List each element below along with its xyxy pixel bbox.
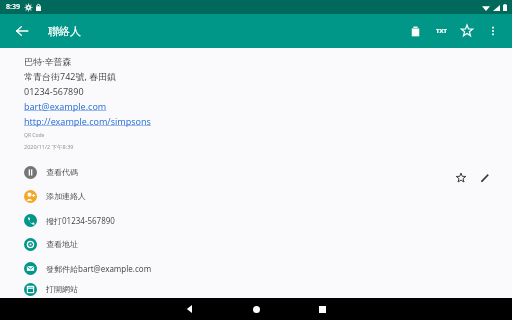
button[interactable]: Home [241, 298, 271, 320]
staticText: 2020/11/2 下午8:39 [24, 143, 74, 151]
staticText: 8:39 [6, 2, 20, 12]
button[interactable]: Recent apps [307, 298, 337, 320]
staticText: 巴特·辛普森 [24, 55, 72, 67]
button[interactable]: Favorite [454, 18, 480, 44]
staticText: 添加連絡人 [46, 191, 86, 201]
button[interactable]: 發郵件給bart@example.com [0, 256, 512, 280]
button[interactable]: Text format [428, 18, 454, 44]
button[interactable]: 查看代碼 [0, 160, 512, 184]
button[interactable]: Edit [476, 169, 494, 187]
staticText: 發郵件給bart@example.com [46, 263, 152, 274]
button[interactable]: 添加連絡人 [0, 184, 512, 208]
button[interactable]: More options [480, 18, 506, 44]
staticText: 聯絡人 [48, 24, 81, 38]
staticText: TXT [436, 27, 447, 35]
staticText: 01234-567890 [24, 85, 84, 97]
button[interactable]: Delete [402, 18, 428, 44]
staticText: 查看地址 [46, 239, 78, 249]
staticText: QR Code [24, 132, 45, 139]
button[interactable]: 查看地址 [0, 232, 512, 256]
button[interactable]: Back [175, 298, 205, 320]
staticText: 查看代碼 [46, 167, 78, 177]
staticText: 撥打01234-567890 [46, 215, 115, 226]
button[interactable]: http://example.com/simpsons [24, 115, 151, 127]
button[interactable]: bart@example.com [24, 100, 107, 112]
button[interactable]: Back [8, 17, 36, 45]
button[interactable]: 撥打01234-567890 [0, 208, 512, 232]
button[interactable]: Add to favorites [452, 169, 470, 187]
staticText: 常青台街742號, 春田鎮 [24, 70, 117, 82]
staticText: 打開網站 [46, 284, 78, 294]
button[interactable]: 打開網站 [0, 280, 512, 298]
